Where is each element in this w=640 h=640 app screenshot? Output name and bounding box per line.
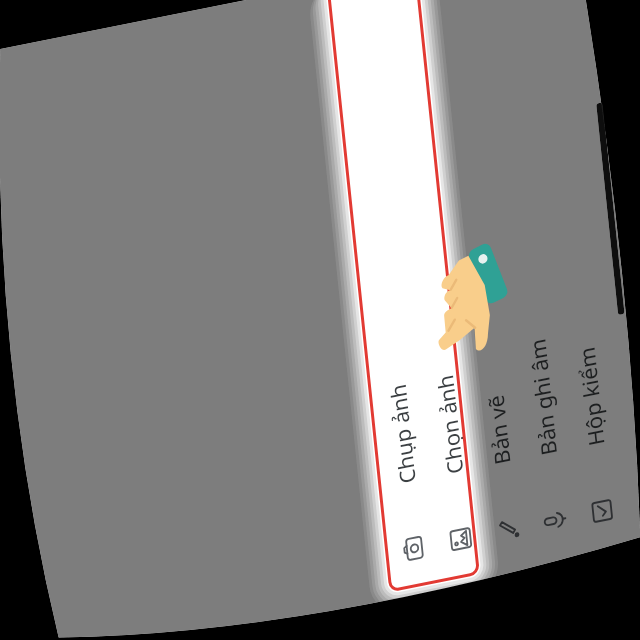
button[interactable]: Bản ghi âm <box>229 0 640 615</box>
staticText: Bản ghi âm <box>475 325 610 469</box>
staticText: Hộp kiểm <box>531 334 640 459</box>
staticText: Chọn ảnh <box>390 361 509 488</box>
button[interactable]: Chụp ảnh <box>87 0 640 640</box>
button[interactable]: Bản vẽ <box>182 0 640 624</box>
staticText: Chụp ảnh <box>342 370 462 497</box>
button[interactable]: Chọn ảnh <box>135 0 640 634</box>
staticText: Bản vẽ <box>452 382 544 478</box>
button[interactable]: Hộp kiểm <box>276 0 640 606</box>
